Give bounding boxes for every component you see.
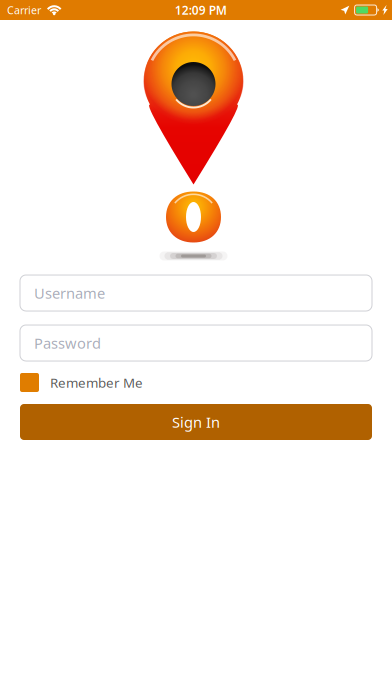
- staticText: 12:09 PM: [175, 2, 227, 18]
- staticText: Sign In: [172, 412, 220, 432]
- button[interactable]: Remember Me: [20, 373, 39, 392]
- staticText: Remember Me: [50, 374, 143, 391]
- button[interactable]: Sign In: [20, 404, 372, 440]
- staticText: Username: [34, 283, 105, 303]
- staticText: Password: [34, 333, 101, 353]
- staticText: Carrier: [7, 3, 41, 17]
